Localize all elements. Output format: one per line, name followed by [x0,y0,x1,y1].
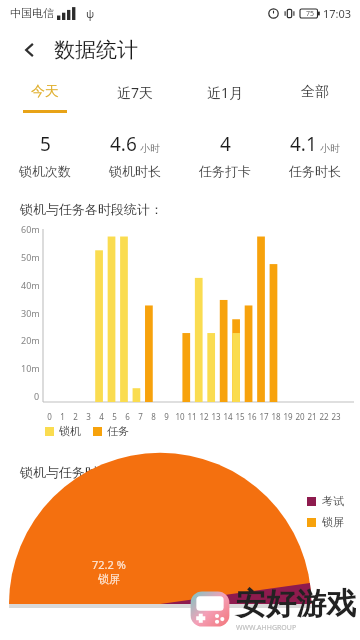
staticText: 锁机次数 [19,163,71,179]
staticText: 4 [220,131,231,157]
staticText: 20m [21,334,40,346]
staticText: 0 [34,390,40,402]
staticText: 22 [319,411,329,422]
staticText: 10 [175,411,185,422]
staticText: 1 [60,411,65,422]
staticText: 12 [199,411,209,422]
staticText: 3 [86,411,91,422]
staticText: 40m [21,279,40,291]
staticText: 15 [235,411,245,422]
staticText: 锁屏 [98,572,120,586]
staticText: 7 [138,411,143,422]
staticText: 锁机 [59,424,81,438]
button[interactable]: 全部 [270,74,360,110]
staticText: 小时 [320,142,340,155]
staticText: 小时 [140,142,160,155]
staticText: 锁机与任务各时段统计： [20,201,163,217]
staticText: 75 [306,9,315,19]
staticText: 锁机与任务时间占比： [20,464,150,480]
staticText: 今天 [31,83,59,101]
staticText: 5 [112,411,117,422]
staticText: 16 [247,411,257,422]
staticText: 任务打卡 [199,163,251,179]
button[interactable]: Back [14,34,46,66]
button[interactable]: 今天 [0,74,90,110]
staticText: 安好游戏 [236,585,356,623]
staticText: 4 [99,411,104,422]
staticText: 17 [259,411,269,422]
staticText: 考试 [322,494,344,508]
staticText: 9 [164,411,169,422]
staticText: 30m [21,307,40,319]
staticText: 50m [21,251,40,263]
staticText: ψ [86,6,95,21]
staticText: 18 [271,411,281,422]
staticText: 4.6 [110,131,137,157]
button[interactable]: 近1月 [180,74,270,110]
staticText: 中国电信 [10,6,54,20]
staticText: 14 [223,411,233,422]
staticText: 10m [21,362,40,374]
staticText: 2 [73,411,78,422]
staticText: 数据统计 [54,37,138,63]
staticText: 17:03 [323,6,352,21]
staticText: 近1月 [207,83,244,102]
staticText: 锁机时长 [109,163,161,179]
staticText: 4.1 [290,131,317,157]
staticText: 23 [331,411,341,422]
staticText: 锁屏 [322,515,344,529]
button[interactable]: 近7天 [90,74,180,110]
staticText: 任务 [107,424,129,438]
staticText: 13 [211,411,221,422]
staticText: 任务时长 [289,163,341,179]
staticText: 6 [125,411,130,422]
staticText: 5 [40,131,51,157]
staticText: 0 [47,411,52,422]
staticText: 21 [307,411,317,422]
staticText: 20 [295,411,305,422]
staticText: 19 [283,411,293,422]
staticText: 72.2 % [92,557,126,572]
staticText: 8 [151,411,156,422]
staticText: 60m [21,223,40,235]
staticText: 近7天 [117,83,154,102]
staticText: 11 [187,411,197,422]
staticText: 全部 [301,83,329,101]
staticText: WWW.AHHGROUP [236,623,297,633]
